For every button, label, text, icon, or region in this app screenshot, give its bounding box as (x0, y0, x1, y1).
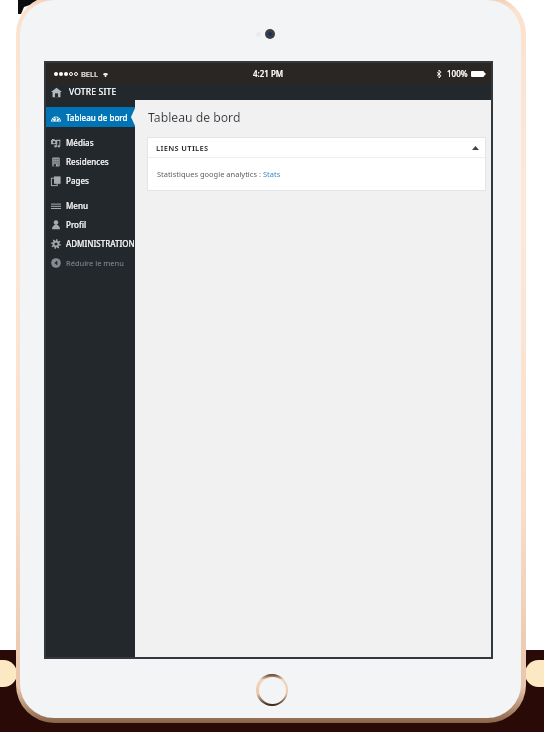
staticText: 100% (447, 68, 468, 79)
staticText: BELL (81, 69, 98, 79)
staticText: Statistiques google analytics : (157, 169, 263, 179)
button[interactable]: Pages (46, 171, 135, 190)
button[interactable]: Visit site (51, 84, 117, 100)
staticText: Tableau de bord (66, 112, 128, 123)
button[interactable]: Stats (263, 169, 281, 179)
button[interactable]: Réduire le menu (46, 253, 135, 272)
staticText: LIENS UTILES (156, 143, 209, 153)
staticText: Residences (66, 156, 109, 167)
staticText: Menu (66, 200, 88, 211)
button[interactable]: ADMINISTRATION (46, 234, 135, 253)
button[interactable]: Médias (46, 133, 135, 152)
staticText: ADMINISTRATION (66, 238, 135, 249)
button[interactable]: Tableau de bord (46, 107, 135, 127)
staticText: Profil (66, 219, 87, 230)
button[interactable]: Residences (46, 152, 135, 171)
button[interactable]: Collapse panel (470, 143, 480, 153)
staticText: 4:21 PM (253, 68, 284, 79)
other: Visit site (51, 87, 62, 98)
button[interactable]: LIENS UTILES (148, 138, 485, 157)
staticText: Tableau de bord (148, 109, 241, 126)
button[interactable]: Menu (46, 196, 135, 215)
staticText: Pages (66, 175, 89, 186)
staticText: Réduire le menu (66, 258, 124, 268)
staticText: VOTRE SITE (69, 86, 117, 98)
staticText: Médias (66, 137, 94, 148)
button[interactable]: Profil (46, 215, 135, 234)
